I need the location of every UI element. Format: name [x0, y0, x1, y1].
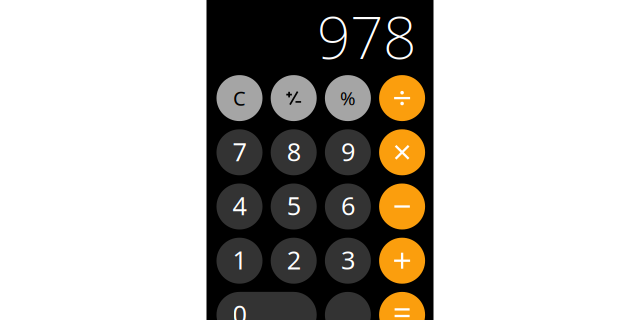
staticText: C: [233, 85, 246, 111]
button[interactable]: 0: [216, 292, 317, 320]
staticText: 7: [232, 134, 246, 168]
button[interactable]: Change sign: [271, 75, 317, 121]
button[interactable]: 7: [216, 129, 262, 175]
staticText: 4: [232, 189, 246, 222]
staticText: 2: [287, 243, 301, 276]
staticText: 3: [341, 243, 355, 276]
button[interactable]: 9: [325, 129, 371, 175]
staticText: 5: [287, 189, 301, 222]
button[interactable]: 4: [216, 183, 262, 229]
button[interactable]: .: [325, 292, 371, 320]
button[interactable]: 2: [271, 238, 317, 284]
staticText: 9: [341, 134, 355, 168]
button[interactable]: 8: [271, 129, 317, 175]
staticText: 1: [232, 243, 246, 276]
button[interactable]: C: [216, 75, 262, 121]
staticText: 8: [287, 134, 301, 168]
staticText: 6: [341, 189, 355, 222]
button[interactable]: %: [325, 75, 371, 121]
button[interactable]: Equals: [379, 292, 425, 320]
button[interactable]: 1: [216, 238, 262, 284]
button[interactable]: 5: [271, 183, 317, 229]
button[interactable]: Subtract: [379, 183, 425, 229]
button[interactable]: 6: [325, 183, 371, 229]
button[interactable]: Multiply: [379, 129, 425, 175]
staticText: 978: [317, 0, 416, 75]
staticText: %: [340, 86, 356, 110]
button[interactable]: Add: [379, 238, 425, 284]
button[interactable]: 3: [325, 238, 371, 284]
button[interactable]: Divide: [379, 75, 425, 121]
staticText: 0: [232, 297, 246, 320]
